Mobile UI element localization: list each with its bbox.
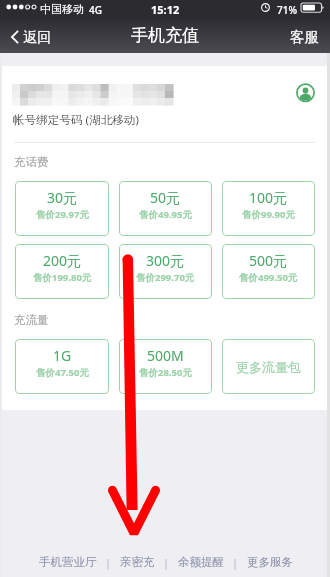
button[interactable]: 30元 bbox=[15, 181, 109, 236]
button[interactable]: 客服 bbox=[278, 20, 330, 53]
staticText: 售价499.50元 bbox=[239, 271, 298, 284]
staticText: 充话费 bbox=[14, 155, 49, 169]
staticText: 充流量 bbox=[14, 313, 49, 327]
staticText: 售价99.90元 bbox=[242, 208, 295, 221]
staticText: 更多流量包 bbox=[236, 359, 301, 375]
button[interactable]: 余额提醒 bbox=[178, 549, 224, 575]
button[interactable]: 手机营业厅 bbox=[39, 549, 97, 575]
button[interactable]: 1G bbox=[15, 339, 109, 394]
staticText: | bbox=[163, 555, 170, 570]
button[interactable]: 50元 bbox=[119, 181, 212, 236]
button[interactable]: Account avatar bbox=[294, 82, 317, 105]
staticText: 500M bbox=[147, 346, 184, 365]
staticText: 1G bbox=[53, 346, 72, 365]
button[interactable]: 300元 bbox=[119, 244, 212, 299]
button[interactable]: 100元 bbox=[222, 181, 315, 236]
staticText: 帐号绑定号码 (湖北移动) bbox=[13, 112, 139, 128]
staticText: 4G bbox=[89, 3, 102, 17]
staticText: 200元 bbox=[43, 251, 82, 270]
staticText: 售价29.97元 bbox=[36, 208, 89, 221]
staticText: 返回 bbox=[23, 28, 52, 46]
staticText: | bbox=[105, 555, 112, 570]
staticText: 15:12 bbox=[151, 2, 180, 17]
staticText: 50元 bbox=[150, 188, 181, 207]
staticText: 手机充值 bbox=[131, 25, 199, 46]
staticText: | bbox=[232, 555, 239, 570]
staticText: 30元 bbox=[47, 188, 78, 207]
staticText: 售价49.95元 bbox=[139, 208, 192, 221]
staticText: 售价47.50元 bbox=[36, 366, 89, 379]
staticText: 售价199.80元 bbox=[33, 271, 92, 284]
button[interactable]: 更多服务 bbox=[247, 549, 293, 575]
button[interactable]: 亲密充 bbox=[120, 549, 155, 575]
button[interactable]: 更多流量包 bbox=[222, 339, 315, 394]
staticText: 500元 bbox=[249, 251, 288, 270]
staticText: 300元 bbox=[146, 251, 185, 270]
button[interactable]: 500元 bbox=[222, 244, 315, 299]
staticText: 100元 bbox=[249, 188, 288, 207]
staticText: 售价28.50元 bbox=[139, 366, 192, 379]
staticText: 售价299.70元 bbox=[136, 271, 195, 284]
staticText: 71% bbox=[277, 3, 297, 17]
staticText: 中国移动 bbox=[40, 2, 84, 16]
button[interactable]: 200元 bbox=[15, 244, 109, 299]
button[interactable]: 500M bbox=[119, 339, 212, 394]
button[interactable]: 返回 bbox=[0, 24, 62, 50]
